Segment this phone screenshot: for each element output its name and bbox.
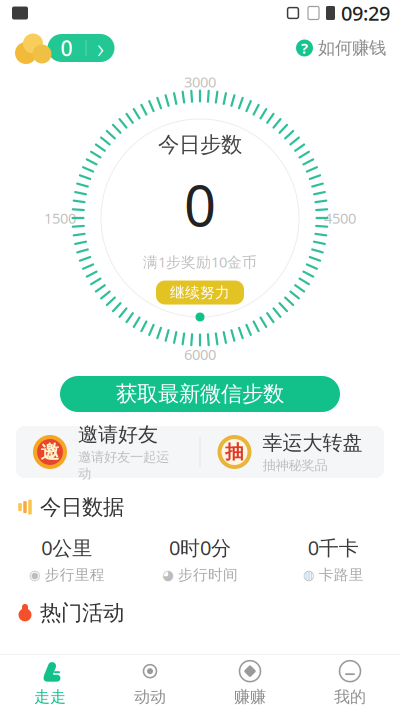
- staticText: ◍: [303, 567, 315, 582]
- staticText: 今日数据: [40, 494, 124, 520]
- staticText: 继续努力: [170, 283, 230, 301]
- staticText: 如何赚钱: [318, 37, 386, 59]
- staticText: 赚赚: [234, 687, 266, 707]
- staticText: 我的: [334, 687, 366, 707]
- staticText: ◉: [29, 567, 41, 582]
- staticText: 抽: [225, 440, 244, 463]
- staticText: 走走: [34, 687, 66, 707]
- button[interactable]: 赚赚: [200, 655, 300, 711]
- button[interactable]: 走走: [0, 655, 100, 711]
- staticText: 步行时间: [178, 566, 238, 584]
- staticText: 1500: [44, 208, 76, 228]
- button[interactable]: 获取最新微信步数: [60, 376, 340, 412]
- button[interactable]: 邀: [16, 426, 199, 478]
- staticText: 获取最新微信步数: [116, 381, 284, 407]
- staticText: 卡路里: [319, 566, 364, 584]
- button[interactable]: 动动: [100, 655, 200, 711]
- staticText: 09:29: [341, 0, 390, 26]
- staticText: 邀请好友一起运动: [78, 449, 169, 482]
- button[interactable]: 金币余额: [6, 30, 118, 66]
- button[interactable]: ?: [296, 37, 386, 59]
- staticText: 0: [184, 168, 216, 242]
- staticText: ?: [301, 38, 308, 58]
- staticText: 抽神秘奖品: [262, 457, 327, 473]
- staticText: 0: [60, 34, 72, 62]
- staticText: ◕: [162, 567, 174, 582]
- staticText: 0千卡: [308, 534, 359, 561]
- staticText: 0时0分: [169, 534, 231, 561]
- staticText: 0公里: [41, 534, 92, 561]
- staticText: 4500: [324, 208, 356, 228]
- staticText: 满1步奖励10金币: [143, 252, 257, 271]
- staticText: ›: [97, 30, 104, 66]
- staticText: 3000: [184, 72, 216, 91]
- button[interactable]: 我的: [300, 655, 400, 711]
- button[interactable]: 抽: [200, 426, 384, 478]
- staticText: 今日步数: [158, 131, 242, 158]
- staticText: 动动: [134, 687, 166, 707]
- staticText: 幸运大转盘: [262, 430, 362, 455]
- staticText: 步行里程: [45, 566, 105, 584]
- staticText: 邀请好友: [78, 422, 158, 447]
- staticText: 6000: [184, 344, 216, 364]
- staticText: 热门活动: [40, 600, 124, 626]
- staticText: 邀: [40, 440, 59, 463]
